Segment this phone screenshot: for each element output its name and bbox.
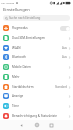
staticText: Flugmodus [12,26,60,30]
button[interactable]: Anzeige [0,91,73,101]
button[interactable]: Bluetooth [0,52,73,62]
staticText: Dual-SIM-Einstellungen [12,36,68,40]
staticText: Sperrbildschirm [12,124,68,128]
staticText: Nur Notrufe [1,2,15,5]
button[interactable]: Sperrbildschirm [0,121,73,130]
staticText: Aus [62,55,67,59]
button[interactable]: Töne [0,101,73,111]
button[interactable]: Recents [44,120,59,130]
button[interactable]: WLAN [0,43,73,53]
button[interactable]: Dual-SIM-Einstellungen [0,33,73,43]
staticText: Bluetooth [12,55,62,59]
staticText: Töne [12,104,68,108]
button[interactable]: Mobile Daten [0,62,73,72]
button[interactable]: Suche nach Einstellung [3,15,70,21]
staticText: WLAN [12,46,62,50]
staticText: Anzeige [12,94,68,98]
staticText: Aus [62,46,67,50]
button[interactable]: Flugmodus [0,23,73,33]
button[interactable]: Back [14,120,29,130]
button[interactable]: Home [29,120,44,130]
staticText: Einstellungen [3,7,30,13]
button[interactable]: Benachrichtigung & Statusleiste [0,111,73,121]
staticText: Mobile Daten [12,65,68,69]
staticText: Mehr [12,75,68,79]
staticText: Startbildschirm [12,85,55,89]
button[interactable]: Mehr [0,72,73,82]
button[interactable]: Startbildschirm [0,82,73,92]
staticText: Benachrichtigung & Statusleiste [12,114,68,118]
staticText: Suche nach Einstellung [9,16,41,20]
staticText: Standard [55,85,67,89]
